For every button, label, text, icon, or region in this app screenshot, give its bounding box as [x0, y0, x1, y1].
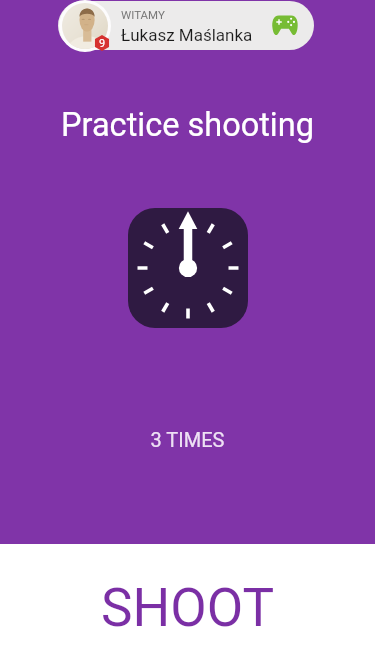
button[interactable]: Timer	[128, 208, 248, 328]
staticText: SHOOT	[101, 577, 275, 639]
staticText: Practice shooting	[0, 106, 375, 144]
staticText: Łukasz Maślanka	[121, 25, 253, 45]
button[interactable]: Play Games	[272, 15, 298, 36]
staticText: WITAMY	[121, 8, 165, 21]
staticText: 9	[99, 37, 106, 50]
button[interactable]: WITAMY	[58, 1, 314, 50]
button[interactable]: SHOOT	[0, 544, 375, 667]
staticText: 3 TIMES	[0, 428, 375, 451]
